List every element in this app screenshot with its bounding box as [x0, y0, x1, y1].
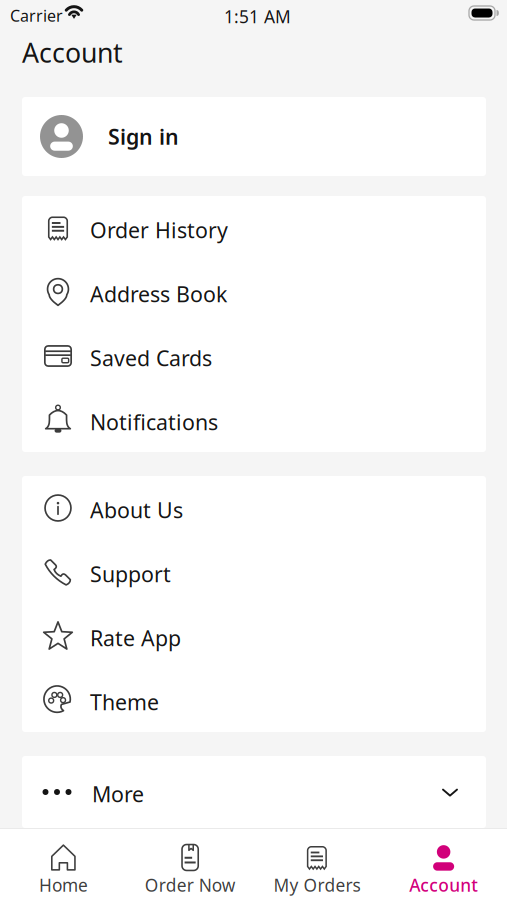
staticText: Rate App — [90, 624, 181, 652]
button[interactable]: Order History — [22, 196, 486, 260]
staticText: Saved Cards — [90, 344, 212, 372]
staticText: Notifications — [90, 408, 218, 436]
staticText: Home — [39, 873, 88, 896]
button[interactable]: Theme — [22, 668, 486, 732]
button[interactable]: Notifications — [22, 388, 486, 452]
staticText: Account — [409, 873, 478, 896]
button[interactable]: Support — [22, 540, 486, 604]
staticText: More — [92, 780, 144, 808]
staticText: Order History — [90, 216, 228, 244]
button[interactable]: Home — [0, 823, 127, 900]
button[interactable]: More — [22, 756, 486, 828]
staticText: Theme — [90, 688, 159, 716]
button[interactable]: Order Now — [127, 823, 254, 900]
staticText: Order Now — [145, 873, 236, 896]
button[interactable]: Sign in — [22, 97, 486, 176]
staticText: About Us — [90, 496, 183, 524]
button[interactable]: Address Book — [22, 260, 486, 324]
button[interactable]: Account — [380, 823, 507, 900]
button[interactable]: Saved Cards — [22, 324, 486, 388]
button[interactable]: Rate App — [22, 604, 486, 668]
staticText: Address Book — [90, 280, 227, 308]
button[interactable]: About Us — [22, 476, 486, 540]
staticText: My Orders — [273, 873, 360, 896]
button[interactable]: My Orders — [253, 823, 380, 900]
staticText: Sign in — [108, 122, 179, 151]
staticText: 1:51 AM — [224, 5, 291, 28]
staticText: Account — [22, 35, 123, 70]
staticText: Carrier — [10, 5, 63, 26]
staticText: Support — [90, 560, 171, 588]
